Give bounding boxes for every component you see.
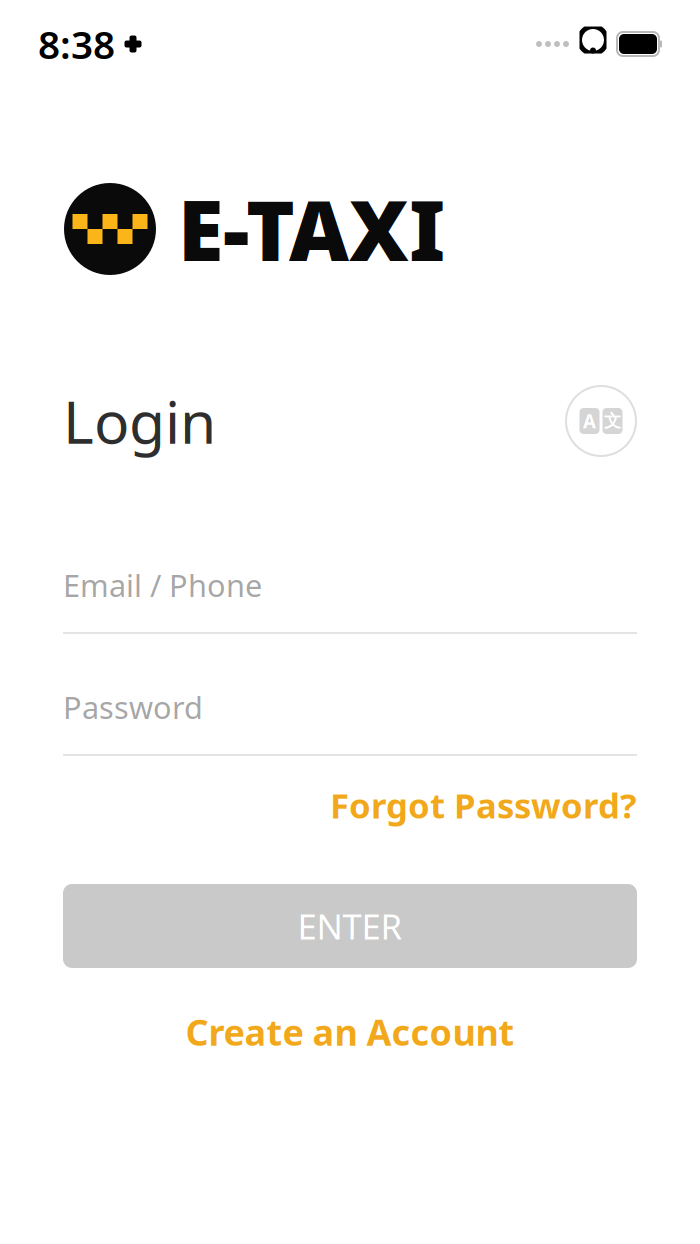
button[interactable]: ENTER: [63, 884, 637, 968]
staticText: A: [583, 409, 596, 433]
button[interactable]: Change language: [565, 385, 637, 457]
staticText: ENTER: [297, 903, 402, 949]
staticText: Password: [63, 687, 203, 727]
staticText: Login: [63, 382, 216, 460]
staticText: E-TAXI: [178, 174, 445, 284]
staticText: Create an Account: [185, 1008, 514, 1056]
staticText: Forgot Password?: [330, 782, 637, 828]
staticText: Email / Phone: [63, 565, 262, 605]
button[interactable]: Create an Account: [165, 1000, 534, 1064]
button[interactable]: Forgot Password?: [330, 776, 637, 834]
staticText: 文: [604, 410, 621, 432]
staticText: 8:38: [38, 18, 115, 70]
